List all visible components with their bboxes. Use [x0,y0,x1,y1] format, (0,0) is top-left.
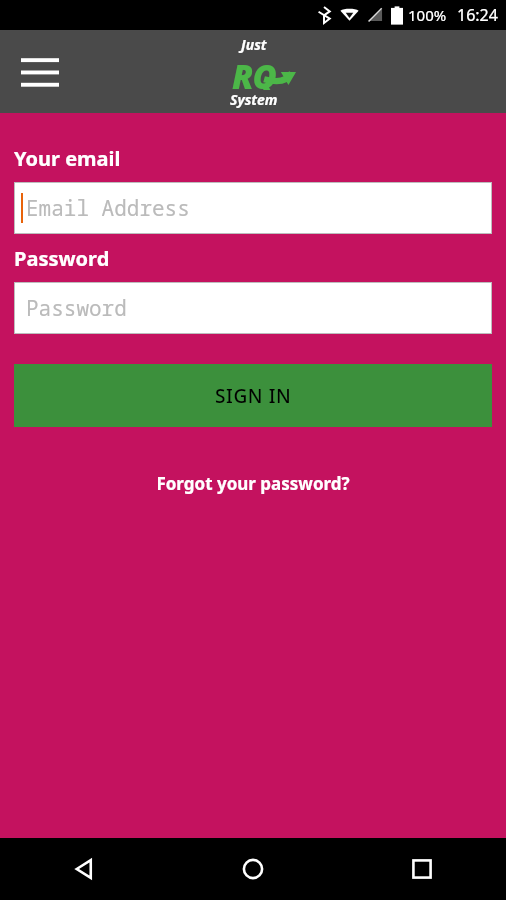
staticText: Just [241,35,267,54]
button[interactable]: Forgot your password? [146,467,360,500]
button[interactable]: Home [168,838,337,900]
button[interactable]: Open navigation menu [14,50,66,94]
staticText: SIGN IN [215,383,292,409]
staticText: 16:24 [457,4,498,26]
staticText: Password [14,245,110,272]
button[interactable]: Recent apps [337,838,506,900]
staticText: Password [26,294,127,323]
button[interactable]: Password [14,282,492,334]
button[interactable]: SIGN IN [14,364,492,427]
staticText: System [230,90,278,109]
button[interactable]: Back [0,838,168,900]
staticText: Forgot your password? [156,472,350,495]
staticText: Email Address [26,194,190,223]
staticText: RQ [232,54,276,90]
staticText: 100% [408,5,447,25]
staticText: Your email [14,145,121,172]
button[interactable]: Email Address [14,182,492,234]
